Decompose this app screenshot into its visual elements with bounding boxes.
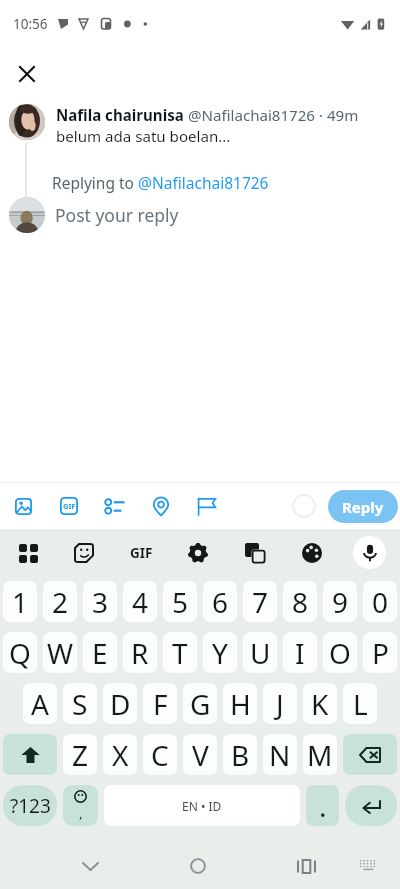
button[interactable]: K	[303, 683, 337, 724]
staticText: 10:56	[13, 15, 48, 33]
staticText: @Nafilachai81726 · 49m	[184, 105, 359, 126]
staticText: belum ada satu boelan...	[56, 126, 231, 147]
button[interactable]: L	[343, 683, 377, 724]
button[interactable]: Recents	[286, 846, 326, 886]
button[interactable]: Q	[3, 632, 37, 673]
staticText: Replying to	[52, 172, 138, 193]
button[interactable]: 0	[363, 581, 397, 622]
button[interactable]: P	[363, 632, 397, 673]
button[interactable]: .	[306, 785, 339, 826]
staticText: L	[353, 685, 368, 723]
staticText: EN • ID	[182, 798, 222, 814]
button[interactable]: N	[263, 734, 297, 775]
button[interactable]: J	[263, 683, 297, 724]
button[interactable]: Shift	[3, 734, 57, 775]
button[interactable]: 6	[203, 581, 237, 622]
button[interactable]: Hide keyboard	[70, 846, 110, 886]
button[interactable]: Reply	[328, 490, 398, 523]
button[interactable]: Theme	[296, 537, 328, 569]
staticText: Nafila chairunisa	[56, 105, 184, 126]
staticText: T	[172, 634, 188, 672]
staticText: 4	[132, 583, 149, 621]
button[interactable]: 7	[243, 581, 277, 622]
button[interactable]: Translate	[239, 537, 271, 569]
staticText: 6	[212, 583, 229, 621]
button[interactable]: C	[143, 734, 177, 775]
button[interactable]: T	[163, 632, 197, 673]
button[interactable]: I	[283, 632, 317, 673]
staticText: 0	[372, 583, 389, 621]
staticText: Reply	[342, 497, 384, 517]
staticText: N	[269, 736, 291, 774]
button[interactable]: 5	[163, 581, 197, 622]
staticText: .	[319, 787, 327, 825]
button[interactable]: Poll	[92, 483, 138, 529]
staticText: 8	[292, 583, 309, 621]
button[interactable]: S	[63, 683, 97, 724]
staticText: GIF	[63, 501, 76, 511]
staticText: Z	[72, 736, 89, 774]
button[interactable]: ?123	[3, 785, 57, 826]
button[interactable]: Add photo	[0, 483, 46, 529]
button[interactable]: Emoji	[63, 785, 98, 826]
button[interactable]: Schedule	[184, 483, 230, 529]
staticText: F	[153, 685, 168, 723]
staticText: H	[230, 685, 251, 723]
button[interactable]: Apps	[12, 537, 44, 569]
staticText: W	[47, 634, 74, 672]
button[interactable]: Settings	[182, 537, 214, 569]
button[interactable]: Voice input	[353, 536, 386, 569]
button[interactable]: X	[103, 734, 137, 775]
button[interactable]: A	[23, 683, 57, 724]
staticText: 9	[332, 583, 349, 621]
button[interactable]: Enter	[345, 785, 397, 826]
staticText: M	[307, 736, 333, 774]
staticText: S	[72, 685, 88, 723]
button[interactable]: G	[183, 683, 217, 724]
button[interactable]: Home	[178, 846, 218, 886]
button[interactable]: W	[43, 632, 77, 673]
button[interactable]: 8	[283, 581, 317, 622]
button[interactable]: Y	[203, 632, 237, 673]
button[interactable]: 4	[123, 581, 157, 622]
button[interactable]: M	[303, 734, 337, 775]
button[interactable]: V	[183, 734, 217, 775]
button[interactable]: EN • ID	[104, 785, 300, 826]
button[interactable]: Backspace	[343, 734, 397, 775]
button[interactable]: 3	[83, 581, 117, 622]
staticText: D	[110, 685, 131, 723]
button[interactable]: F	[143, 683, 177, 724]
button[interactable]: B	[223, 734, 257, 775]
staticText: 3	[92, 583, 109, 621]
staticText: K	[311, 685, 329, 723]
staticText: ?123	[10, 793, 51, 819]
button[interactable]: Z	[63, 734, 97, 775]
button[interactable]: Switch keyboard	[348, 846, 388, 886]
staticText: Y	[212, 634, 228, 672]
staticText: ,	[79, 804, 83, 822]
button[interactable]: H	[223, 683, 257, 724]
button[interactable]: E	[83, 632, 117, 673]
button[interactable]: Location	[138, 483, 184, 529]
button[interactable]: Stickers	[68, 537, 100, 569]
staticText: E	[92, 634, 108, 672]
button[interactable]: 9	[323, 581, 357, 622]
button[interactable]: 2	[43, 581, 77, 622]
staticText: 2	[52, 583, 69, 621]
staticText: J	[276, 685, 284, 723]
button[interactable]: 1	[3, 581, 37, 622]
staticText: O	[329, 634, 351, 672]
staticText: B	[231, 736, 250, 774]
button[interactable]: D	[103, 683, 137, 724]
button[interactable]: GIF	[125, 537, 157, 569]
button[interactable]: O	[323, 632, 357, 673]
staticText: 5	[172, 583, 189, 621]
staticText: Post your reply	[55, 203, 179, 227]
button[interactable]: R	[123, 632, 157, 673]
button[interactable]: Add GIF	[46, 483, 92, 529]
button[interactable]: Close	[9, 56, 44, 91]
staticText: V	[192, 736, 209, 774]
button[interactable]: U	[243, 632, 277, 673]
staticText: G	[190, 685, 211, 723]
staticText: I	[295, 634, 305, 672]
